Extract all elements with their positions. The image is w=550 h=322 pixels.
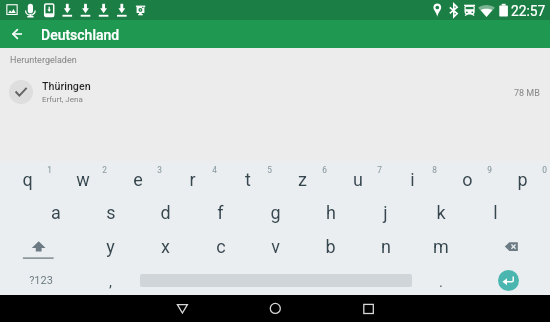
button[interactable]: g <box>248 196 303 228</box>
staticText: r <box>189 169 196 190</box>
button[interactable]: a <box>28 196 83 228</box>
staticText: z <box>298 169 307 190</box>
button[interactable]: 7 <box>352 154 407 186</box>
staticText: x <box>161 236 170 257</box>
staticText: ?123 <box>29 274 53 287</box>
staticText: 1 <box>47 165 52 175</box>
staticText: . <box>439 273 443 291</box>
staticText: 22:57 <box>511 3 546 19</box>
button[interactable]: Backspace <box>484 231 539 262</box>
staticText: 3 <box>157 165 162 175</box>
staticText: q <box>22 169 33 190</box>
button[interactable]: r <box>165 163 220 195</box>
staticText: u <box>353 169 363 190</box>
button[interactable]: b <box>303 230 358 262</box>
staticText: b <box>325 236 336 257</box>
staticText: i <box>410 169 415 190</box>
staticText: 8 <box>432 165 437 175</box>
button[interactable]: i <box>385 163 440 195</box>
button[interactable]: Back <box>5 20 32 48</box>
staticText: Erfurt, Jena <box>42 95 83 104</box>
button[interactable]: j <box>358 196 413 228</box>
button[interactable]: Enter <box>498 270 519 291</box>
button[interactable]: f <box>193 196 248 228</box>
staticText: v <box>271 236 280 257</box>
button[interactable]: 9 <box>462 154 517 186</box>
staticText: c <box>216 236 226 257</box>
staticText: , <box>109 273 112 291</box>
staticText: 6 <box>322 165 327 175</box>
staticText: m <box>433 236 449 257</box>
button[interactable]: p <box>495 163 550 195</box>
button[interactable]: w <box>55 163 110 195</box>
staticText: l <box>493 202 498 223</box>
staticText: a <box>51 202 61 223</box>
staticText: 5 <box>267 165 272 175</box>
button[interactable]: z <box>275 163 330 195</box>
button[interactable]: 0 <box>517 154 550 186</box>
staticText: n <box>381 236 391 257</box>
staticText: w <box>76 169 90 190</box>
button[interactable]: k <box>413 196 468 228</box>
button[interactable]: ?123 <box>13 264 68 296</box>
button[interactable]: v <box>248 230 303 262</box>
staticText: 7 <box>377 165 382 175</box>
button[interactable]: h <box>303 196 358 228</box>
staticText: Heruntergeladen <box>10 55 77 66</box>
button[interactable]: Back <box>160 295 205 322</box>
button[interactable]: Shift <box>10 232 65 263</box>
button[interactable]: 2 <box>77 154 132 186</box>
button[interactable]: s <box>83 196 138 228</box>
button[interactable]: l <box>468 196 523 228</box>
button[interactable]: 8 <box>407 154 462 186</box>
staticText: h <box>326 202 336 223</box>
button[interactable]: 4 <box>187 154 242 186</box>
button[interactable]: o <box>440 163 495 195</box>
button[interactable]: 6 <box>297 154 352 186</box>
staticText: k <box>436 202 446 223</box>
staticText: 4 <box>212 165 217 175</box>
staticText: s <box>106 202 116 223</box>
button[interactable]: y <box>83 230 138 262</box>
button[interactable]: m <box>413 230 468 262</box>
button[interactable]: . <box>413 266 468 298</box>
button[interactable]: n <box>358 230 413 262</box>
staticText: 78 MB <box>514 88 540 99</box>
staticText: 0 <box>542 165 547 175</box>
button[interactable]: Thüringen <box>0 76 550 110</box>
button[interactable]: Home <box>253 295 298 322</box>
button[interactable]: c <box>193 230 248 262</box>
button[interactable]: q <box>0 163 55 195</box>
staticText: p <box>517 169 528 190</box>
button[interactable]: 1 <box>22 154 77 186</box>
button[interactable]: 3 <box>132 154 187 186</box>
staticText: Deutschland <box>41 27 120 43</box>
button[interactable]: Recents <box>346 295 391 322</box>
button[interactable]: t <box>220 163 275 195</box>
staticText: g <box>270 202 281 223</box>
staticText: y <box>106 236 115 257</box>
staticText: d <box>160 202 171 223</box>
staticText: Thüringen <box>42 80 91 93</box>
staticText: f <box>217 202 224 223</box>
staticText: j <box>383 202 388 223</box>
button[interactable]: 5 <box>242 154 297 186</box>
staticText: o <box>462 169 473 190</box>
button[interactable]: , <box>83 266 138 298</box>
staticText: 2 <box>102 165 107 175</box>
staticText: e <box>133 169 143 190</box>
staticText: t <box>245 169 251 190</box>
button[interactable]: e <box>110 163 165 195</box>
button[interactable]: u <box>330 163 385 195</box>
button[interactable]: x <box>138 230 193 262</box>
button[interactable]: d <box>138 196 193 228</box>
staticText: 9 <box>487 165 492 175</box>
